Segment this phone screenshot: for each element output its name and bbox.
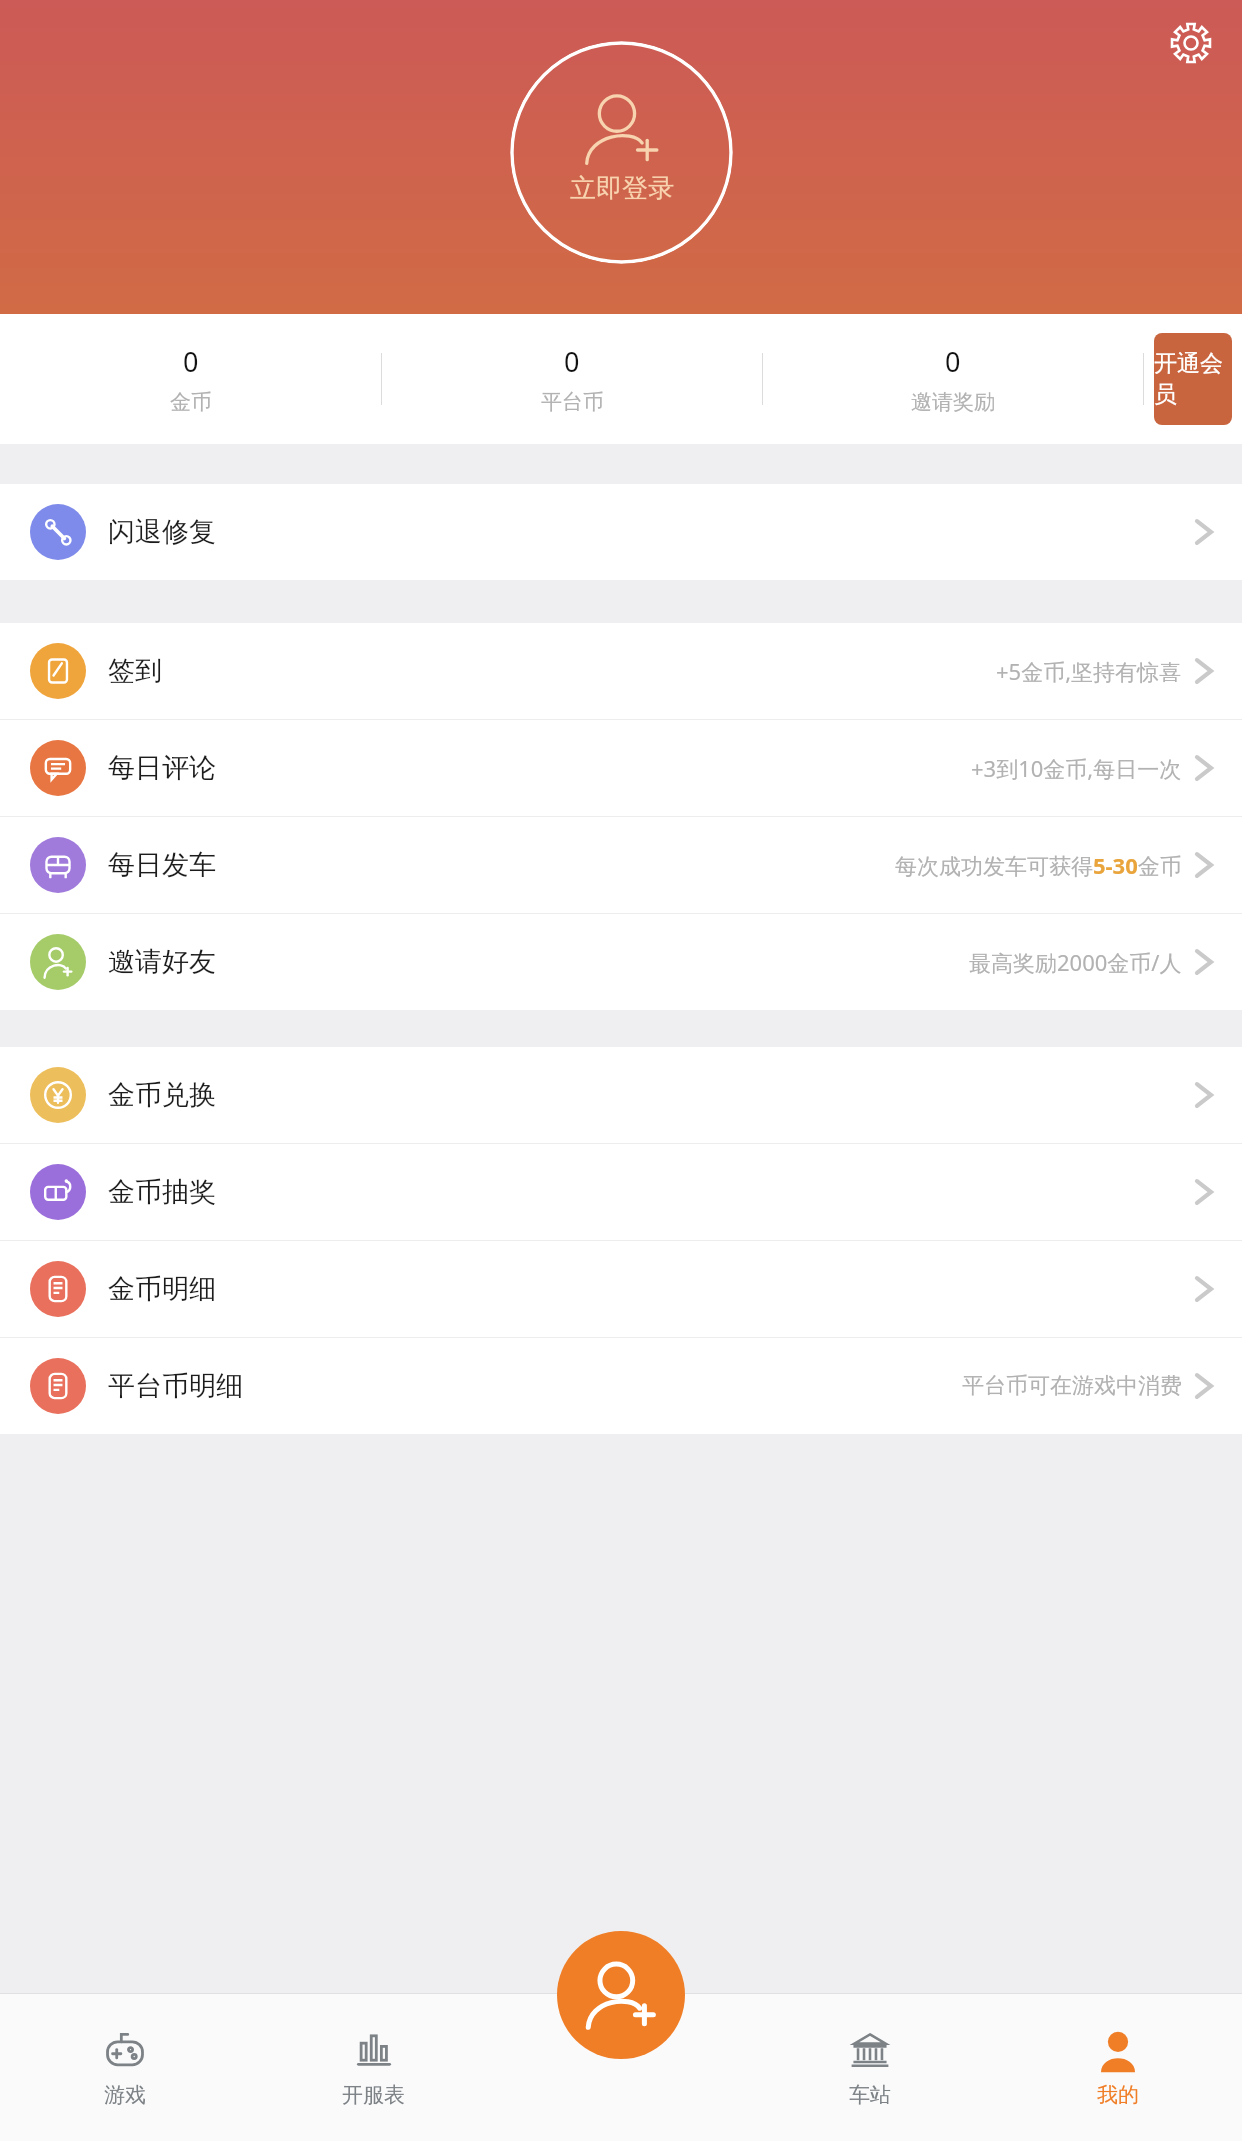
staticText: 车站 [849, 2082, 891, 2108]
staticText: 邀请奖励 [911, 389, 995, 415]
button[interactable]: 0 [763, 329, 1143, 429]
staticText: 0 [564, 343, 580, 380]
button[interactable]: 开服表 [249, 1994, 498, 2141]
staticText: 开服表 [342, 2082, 405, 2108]
button[interactable]: 邀请好友 [0, 914, 1242, 1010]
button[interactable]: 金币兑换 [0, 1047, 1242, 1143]
button[interactable]: Settings [1158, 10, 1224, 76]
staticText: 金币明细 [108, 1272, 216, 1306]
staticText: +5金币,坚持有惊喜 [996, 656, 1182, 686]
staticText: 开通会员 [1154, 349, 1232, 409]
staticText: 我的 [1097, 2082, 1139, 2108]
staticText: 0 [945, 343, 961, 380]
staticText: 立即登录 [570, 172, 674, 205]
staticText: 金币 [170, 389, 212, 415]
staticText: 闪退修复 [108, 515, 216, 549]
staticText: 金币抽奖 [108, 1175, 216, 1209]
button[interactable]: 每日发车 [0, 817, 1242, 913]
staticText: 平台币 [541, 389, 604, 415]
staticText: 最高奖励2000金币/人 [969, 947, 1182, 977]
button[interactable]: 0 [382, 329, 762, 429]
staticText: 金币兑换 [108, 1078, 216, 1112]
staticText: 每日发车 [108, 848, 216, 882]
button[interactable]: 闪退修复 [0, 484, 1242, 580]
button[interactable]: 车站 [746, 1994, 994, 2141]
button[interactable]: 签到 [0, 623, 1242, 719]
button[interactable]: 金币明细 [0, 1241, 1242, 1337]
button[interactable]: 0 [0, 329, 381, 429]
staticText: 签到 [108, 654, 162, 688]
staticText: 每次成功发车可获得5-30金币 [895, 850, 1182, 880]
button[interactable]: 平台币明细 [0, 1338, 1242, 1434]
staticText: 平台币明细 [108, 1369, 243, 1403]
staticText: 每日评论 [108, 751, 216, 785]
staticText: 0 [183, 343, 199, 380]
staticText: 平台币可在游戏中消费 [962, 1372, 1182, 1400]
button[interactable]: 金币抽奖 [0, 1144, 1242, 1240]
staticText: 邀请好友 [108, 945, 216, 979]
button[interactable]: 每日评论 [0, 720, 1242, 816]
button[interactable]: 开通会员 [1154, 333, 1232, 425]
button[interactable]: Add account [557, 1931, 685, 2059]
staticText: 游戏 [104, 2082, 146, 2108]
button[interactable]: 立即登录 [510, 41, 733, 264]
staticText: +3到10金币,每日一次 [971, 753, 1182, 783]
button[interactable]: 我的 [994, 1994, 1242, 2141]
button[interactable]: 游戏 [0, 1994, 249, 2141]
